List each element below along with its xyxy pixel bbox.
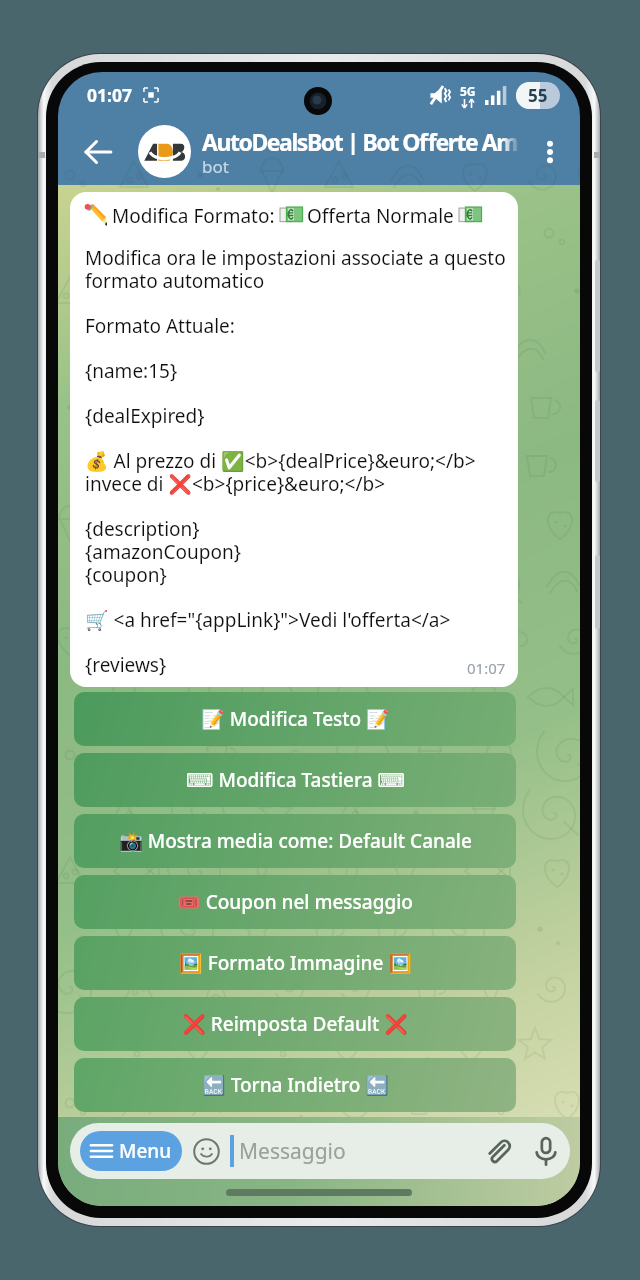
button[interactable]: 📝 Modifica Testo 📝 bbox=[74, 692, 516, 746]
staticText: 55 bbox=[528, 84, 548, 107]
staticText: ❌ Reimposta Default ❌ bbox=[182, 1011, 408, 1037]
staticText: bot bbox=[202, 155, 229, 178]
button[interactable]: 🖼️ Formato Immagine 🖼️ bbox=[74, 936, 516, 990]
staticText: 01:07 bbox=[87, 83, 132, 107]
staticText: ⌨️ Modifica Tastiera ⌨️ bbox=[186, 767, 405, 793]
button[interactable]: 📸 Mostra media come: Default Canale bbox=[74, 814, 516, 868]
button[interactable]: Emoji bbox=[193, 1138, 220, 1165]
staticText: 💰 Al prezzo di ✅<b>{dealPrice}&euro;</b>… bbox=[85, 448, 476, 497]
staticText: AutoDealsBot | Bot Offerte Am bbox=[202, 126, 518, 155]
staticText: {reviews} bbox=[85, 652, 167, 678]
staticText: 🛒 <a href="{appLink}">Vedi l'offerta</a> bbox=[85, 607, 451, 633]
staticText: 🎟️ Coupon nel messaggio bbox=[177, 889, 413, 915]
button[interactable]: Attach bbox=[482, 1135, 514, 1167]
staticText: 01:07 bbox=[467, 658, 506, 678]
staticText: 5G bbox=[460, 83, 476, 99]
button[interactable]: 🎟️ Coupon nel messaggio bbox=[74, 875, 516, 929]
staticText: Modifica Formato: bbox=[112, 203, 280, 226]
staticText: Menu bbox=[119, 1138, 172, 1164]
button[interactable]: ⌨️ Modifica Tastiera ⌨️ bbox=[74, 753, 516, 807]
staticText: Messaggio bbox=[239, 1137, 346, 1166]
staticText: 📝 Modifica Testo 📝 bbox=[201, 706, 390, 732]
staticText: 🖼️ Formato Immagine 🖼️ bbox=[179, 950, 412, 976]
staticText: 📸 Mostra media come: Default Canale bbox=[119, 828, 472, 854]
staticText: {name:15} bbox=[85, 358, 178, 384]
staticText: {description} {amazonCoupon} {coupon} bbox=[85, 516, 241, 588]
button[interactable]: Menu bbox=[80, 1131, 182, 1171]
staticText: Formato Attuale: bbox=[85, 313, 235, 339]
button[interactable]: 🔙 Torna Indietro 🔙 bbox=[74, 1058, 516, 1112]
staticText: Offerta Normale bbox=[307, 203, 459, 226]
staticText: {dealExpired} bbox=[85, 403, 205, 429]
button[interactable]: Back bbox=[58, 118, 138, 185]
staticText: 🔙 Torna Indietro 🔙 bbox=[202, 1072, 389, 1098]
staticText: Modifica ora le impostazioni associate a… bbox=[85, 245, 506, 294]
button[interactable]: Voice message bbox=[530, 1135, 562, 1167]
button[interactable]: More options bbox=[520, 118, 580, 185]
button[interactable]: ❌ Reimposta Default ❌ bbox=[74, 997, 516, 1051]
